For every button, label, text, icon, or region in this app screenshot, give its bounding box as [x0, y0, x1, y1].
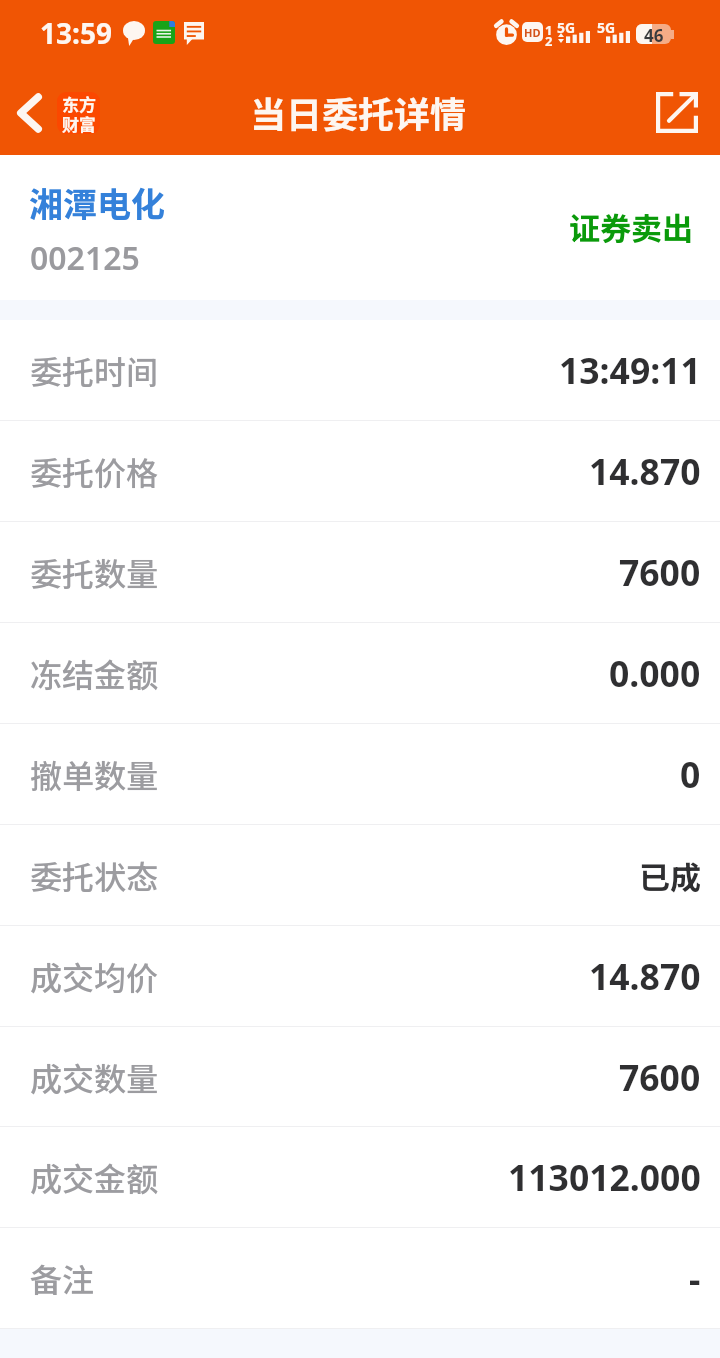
button[interactable]: Back	[0, 70, 118, 155]
button[interactable]: 成交数量	[0, 1027, 720, 1126]
staticText: 2	[545, 32, 553, 50]
staticText: 7600	[619, 1053, 701, 1101]
staticText: 已成	[639, 853, 701, 898]
staticText: 5G	[597, 18, 616, 37]
staticText: -	[689, 1254, 701, 1302]
button[interactable]: 委托价格	[0, 421, 720, 521]
staticText: 14.870	[589, 447, 701, 495]
staticText: 湘潭电化	[29, 178, 165, 227]
button[interactable]: 成交均价	[0, 926, 720, 1026]
staticText: 46	[644, 24, 664, 44]
staticText: 东方	[62, 92, 96, 116]
staticText: 5G	[557, 18, 576, 37]
button[interactable]: 委托状态	[0, 825, 720, 925]
staticText: 撤单数量	[30, 751, 159, 797]
staticText: HD	[524, 25, 541, 40]
button[interactable]: 委托时间	[0, 320, 720, 420]
button[interactable]: 撤单数量	[0, 724, 720, 824]
staticText: 委托时间	[30, 347, 159, 393]
staticText: 13:49:11	[559, 346, 701, 394]
staticText: 委托数量	[30, 549, 159, 595]
staticText: 成交均价	[30, 953, 159, 999]
button[interactable]: 委托数量	[0, 522, 720, 622]
staticText: 成交金额	[30, 1154, 159, 1200]
staticText: 13:59	[40, 14, 112, 52]
staticText: 财富	[62, 111, 96, 134]
staticText: 备注	[30, 1255, 95, 1301]
staticText: 委托状态	[30, 852, 159, 898]
staticText: 证券卖出	[569, 204, 693, 249]
staticText: 002125	[30, 236, 140, 280]
staticText: 7600	[619, 548, 701, 596]
button[interactable]: Share	[635, 70, 720, 155]
button[interactable]: 成交金额	[0, 1127, 720, 1227]
staticText: 0.000	[609, 649, 701, 697]
button[interactable]: 冻结金额	[0, 623, 720, 723]
staticText: 冻结金额	[30, 650, 159, 696]
staticText: 14.870	[589, 952, 701, 1000]
staticText: 113012.000	[508, 1153, 701, 1201]
staticText: 当日委托详情	[250, 86, 467, 138]
staticText: 成交数量	[30, 1054, 159, 1100]
button[interactable]: 备注	[0, 1228, 720, 1328]
staticText: 1	[545, 21, 553, 39]
staticText: 委托价格	[30, 448, 159, 494]
staticText: 0	[680, 750, 701, 798]
